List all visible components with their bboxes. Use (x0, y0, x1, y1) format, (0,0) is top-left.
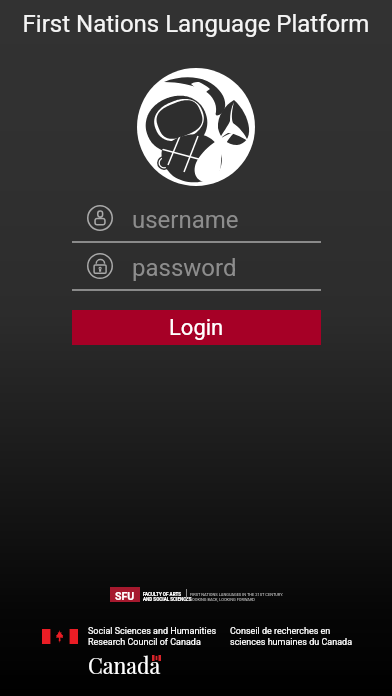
staticText: AND SOCIAL SCIENCES (143, 597, 192, 602)
staticText: Social Sciences and Humanities (88, 626, 217, 637)
staticText: First Nations Language Platform (0, 10, 392, 38)
button[interactable]: Password (72, 251, 321, 291)
other: Password (87, 253, 113, 279)
staticText: password (132, 254, 237, 282)
staticText: username (132, 206, 239, 234)
staticText: FIRST NATIONS LANGUAGES IN THE 21ST CENT… (190, 592, 284, 597)
staticText: Conseil de recherches en (230, 626, 331, 637)
staticText: Canada (88, 651, 161, 680)
button[interactable]: Login (72, 310, 321, 345)
staticText: sciences humaines du Canada (230, 637, 353, 648)
button[interactable]: Username (72, 203, 321, 243)
staticText: SFU (115, 590, 135, 602)
staticText: Research Council of Canada (88, 637, 201, 648)
other: Username (87, 205, 113, 231)
staticText: Login (169, 315, 224, 341)
staticText: FACULTY OF ARTS (143, 592, 182, 597)
staticText: LOOKING BACK, LOOKING FORWARD (190, 597, 255, 602)
